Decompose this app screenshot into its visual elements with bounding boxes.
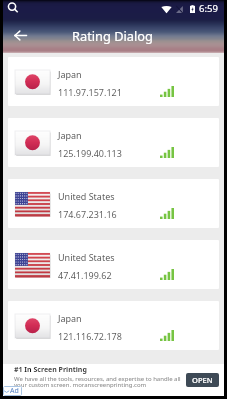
staticText: 121.116.72.178 bbox=[58, 330, 122, 342]
staticText: Ad bbox=[10, 386, 19, 396]
button[interactable]: Search bbox=[7, 2, 19, 14]
button[interactable]: Back bbox=[8, 23, 32, 47]
staticText: Japan bbox=[58, 129, 82, 141]
button[interactable]: OPEN bbox=[186, 373, 219, 387]
staticText: 111.97.157.121 bbox=[58, 86, 122, 98]
button[interactable]: United States bbox=[8, 179, 219, 228]
staticText: OPEN bbox=[192, 375, 213, 385]
staticText: United States bbox=[58, 251, 115, 263]
staticText: Rating Dialog bbox=[72, 27, 153, 44]
staticText: 6:59 bbox=[199, 2, 218, 15]
staticText: Japan bbox=[58, 312, 82, 324]
button[interactable]: United States bbox=[8, 240, 219, 289]
staticText: 174.67.231.16 bbox=[58, 208, 117, 220]
staticText: your custom screen. moranscreenprinting.… bbox=[14, 381, 147, 389]
staticText: United States bbox=[58, 190, 115, 202]
button[interactable]: Ad choices bbox=[3, 386, 22, 396]
staticText: 125.199.40.113 bbox=[58, 147, 122, 159]
staticText: Japan bbox=[58, 68, 82, 80]
staticText: #1 In Screen Printing bbox=[14, 365, 87, 375]
button[interactable]: Japan bbox=[8, 57, 219, 106]
button[interactable]: Japan bbox=[8, 118, 219, 167]
staticText: 47.41.199.62 bbox=[58, 269, 112, 281]
staticText: We have all the tools, resources, and ex… bbox=[14, 375, 181, 383]
button[interactable]: Japan bbox=[8, 301, 219, 350]
